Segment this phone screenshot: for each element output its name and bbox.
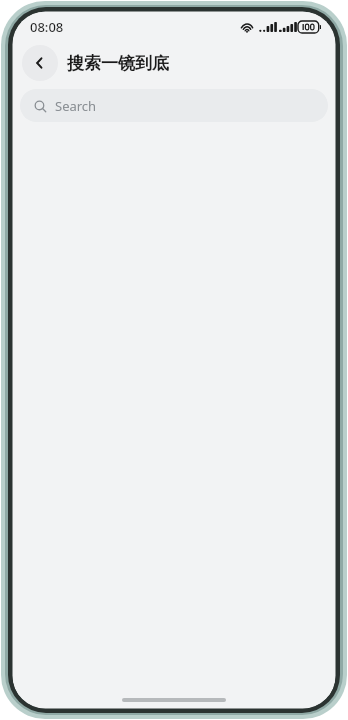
- staticText: 搜索一镜到底: [67, 53, 169, 74]
- button[interactable]: Back: [22, 45, 58, 81]
- staticText: 08:08: [30, 18, 64, 36]
- staticText: Search: [55, 97, 97, 115]
- button[interactable]: Search: [20, 89, 328, 122]
